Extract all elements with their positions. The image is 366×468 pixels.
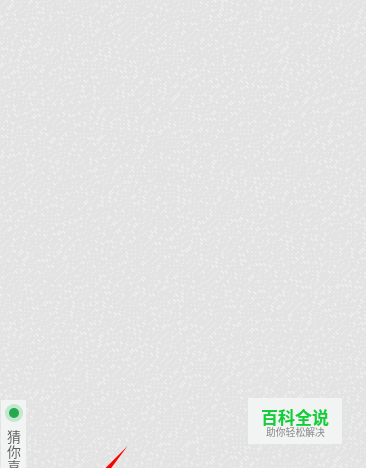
button[interactable]: 百科全说 — [248, 398, 342, 444]
staticText: 助你轻松解决 — [266, 425, 325, 439]
button[interactable]: 猜你喜欢 — [1, 400, 26, 468]
staticText: 猜 你 喜 — [7, 426, 21, 468]
staticText: 百科全说 — [261, 404, 329, 429]
